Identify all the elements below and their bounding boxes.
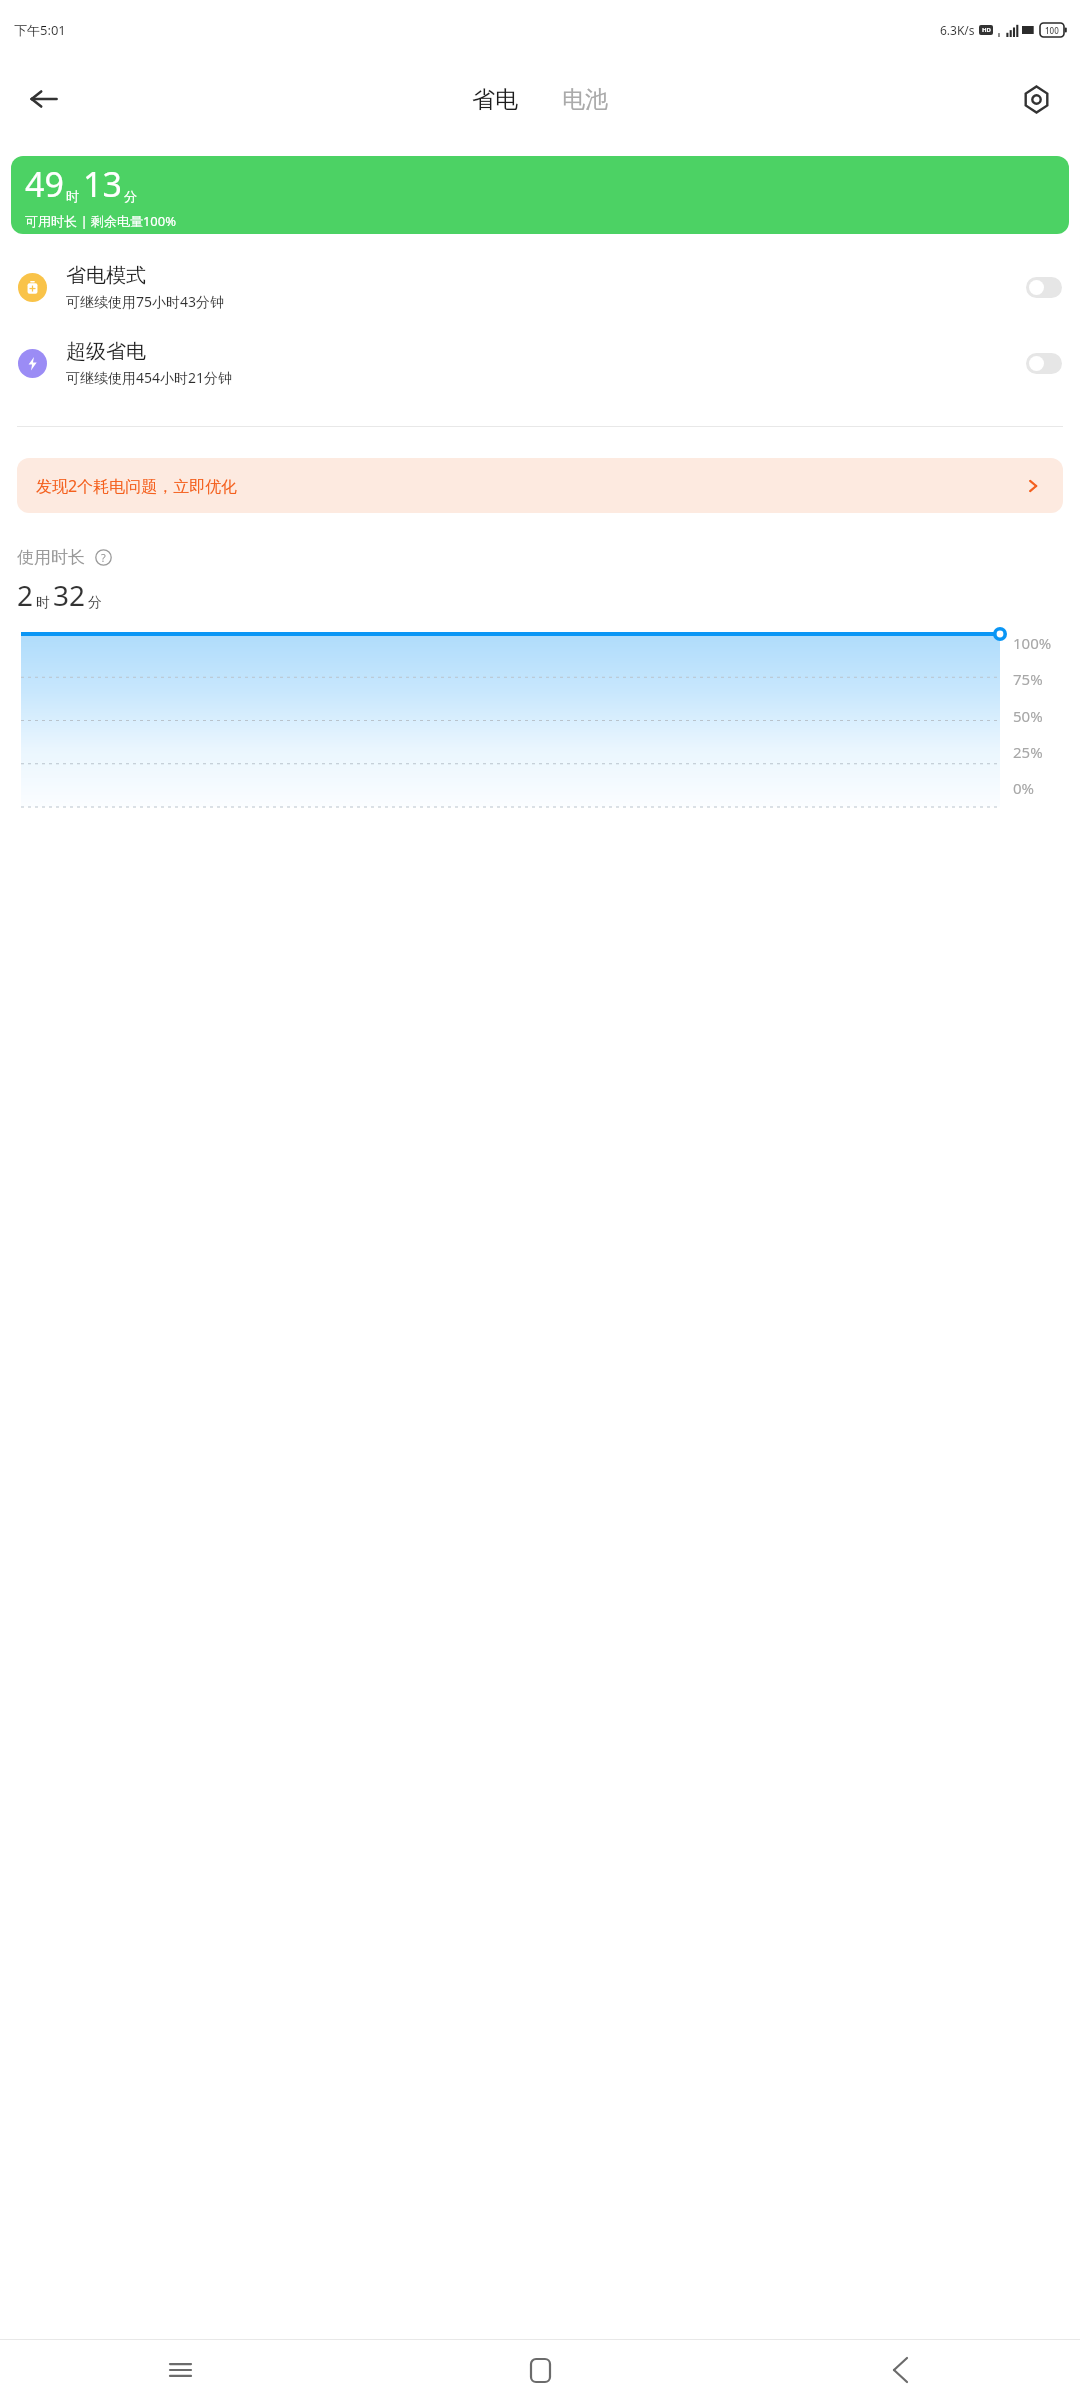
staticText: 时: [36, 594, 50, 612]
staticText: 25%: [1013, 742, 1043, 762]
button[interactable]: 超级省电: [1026, 353, 1062, 374]
staticText: 使用时长: [17, 547, 85, 568]
button[interactable]: 省电模式: [1026, 277, 1062, 298]
staticText: 可继续使用75小时43分钟: [66, 292, 225, 311]
button[interactable]: 电池: [554, 79, 616, 120]
button[interactable]: 返回: [720, 2340, 1080, 2400]
staticText: 100: [1045, 25, 1059, 36]
staticText: 分: [88, 594, 102, 612]
staticText: 发现2个耗电问题，立即优化: [36, 475, 238, 497]
staticText: 49: [25, 161, 64, 207]
button[interactable]: 帮助: [92, 546, 114, 568]
staticText: 13: [83, 161, 122, 207]
staticText: 100%: [1013, 633, 1052, 653]
staticText: 分: [124, 188, 137, 204]
staticText: 省电: [472, 85, 518, 114]
staticText: 下午5:01: [14, 21, 66, 39]
button[interactable]: 省电: [464, 79, 526, 120]
button[interactable]: 返回: [20, 75, 68, 123]
button[interactable]: 主屏幕: [360, 2340, 720, 2400]
staticText: 时: [66, 188, 79, 204]
staticText: 可用时长 | 剩余电量100%: [25, 212, 177, 230]
staticText: 6.3K/s: [940, 22, 975, 38]
staticText: 50%: [1013, 706, 1043, 726]
staticText: 32: [53, 576, 86, 614]
staticText: ?: [101, 550, 106, 565]
button[interactable]: 省电模式: [0, 257, 1080, 317]
staticText: 0%: [1013, 778, 1035, 798]
button[interactable]: 设置: [1012, 75, 1060, 123]
staticText: 超级省电: [66, 339, 146, 364]
button[interactable]: 最近任务: [0, 2340, 360, 2400]
button[interactable]: 49: [11, 156, 1069, 234]
staticText: 2: [17, 576, 34, 614]
staticText: HD: [982, 26, 991, 34]
button[interactable]: 发现2个耗电问题，立即优化: [17, 458, 1063, 513]
staticText: 省电模式: [66, 263, 146, 288]
staticText: 75%: [1013, 669, 1043, 689]
staticText: 电池: [562, 85, 608, 114]
staticText: 可继续使用454小时21分钟: [66, 368, 233, 387]
button[interactable]: 超级省电: [0, 333, 1080, 393]
